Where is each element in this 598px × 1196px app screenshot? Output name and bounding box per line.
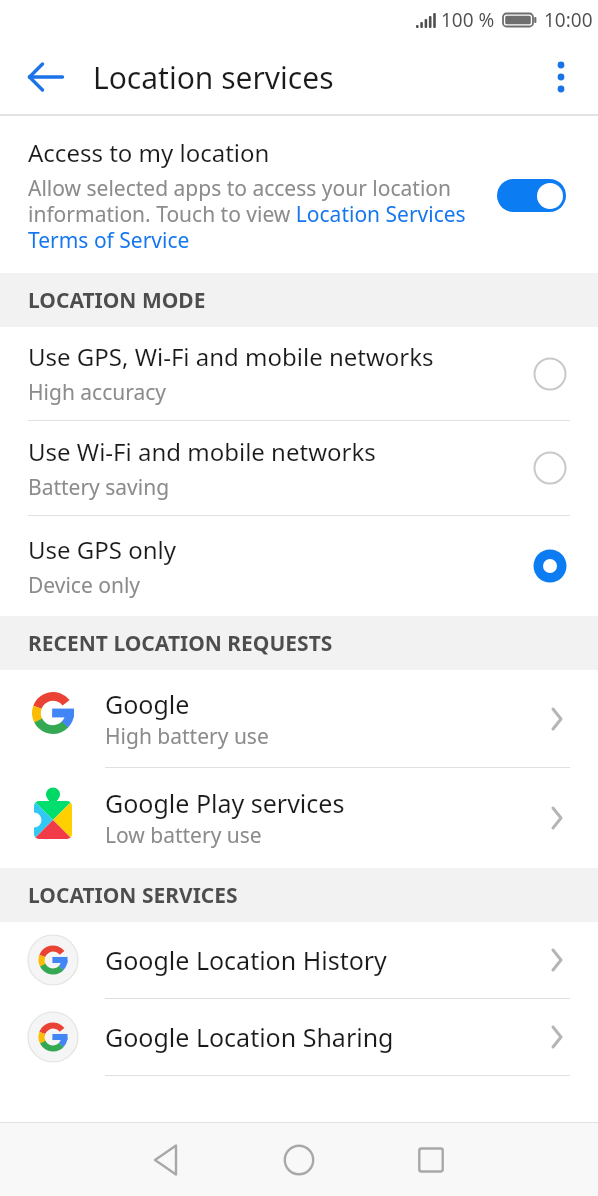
button[interactable] (143, 1136, 191, 1184)
staticText: Low battery use (105, 821, 262, 850)
button[interactable] (407, 1136, 455, 1184)
button[interactable] (22, 53, 70, 101)
button[interactable]: Google Location History (0, 922, 598, 998)
staticText: Battery saving (28, 473, 170, 502)
staticText: Google Location Sharing (105, 1020, 394, 1054)
staticText: Access to my location (28, 136, 270, 169)
staticText: Google Location History (105, 943, 387, 977)
button[interactable] (541, 57, 581, 97)
staticText: LOCATION SERVICES (28, 881, 238, 910)
staticText: RECENT LOCATION REQUESTS (28, 629, 333, 658)
staticText: High battery use (105, 722, 269, 751)
button[interactable] (275, 1136, 323, 1184)
staticText: LOCATION MODE (28, 286, 206, 315)
button[interactable]: Use GPS only (0, 516, 598, 616)
button[interactable]: Access to my location (0, 116, 598, 273)
button[interactable]: Google Location Sharing (0, 999, 598, 1075)
staticText: Google Play services (105, 786, 345, 820)
staticText: High accuracy (28, 378, 167, 407)
staticText: Use GPS only (28, 533, 177, 566)
staticText: Location services (93, 57, 334, 98)
button[interactable]: Google (0, 670, 598, 767)
button[interactable] (497, 179, 566, 212)
staticText: Use Wi-Fi and mobile networks (28, 435, 376, 468)
staticText: Use GPS, Wi-Fi and mobile networks (28, 340, 434, 373)
button[interactable]: Use Wi-Fi and mobile networks (0, 421, 598, 515)
button[interactable]: Use GPS, Wi-Fi and mobile networks (0, 327, 598, 420)
staticText: Allow selected apps to access your locat… (28, 174, 466, 255)
staticText: 10:00 (544, 7, 593, 33)
button[interactable]: Google Play services (0, 768, 598, 868)
staticText: 100 % (441, 7, 495, 33)
staticText: Google (105, 687, 190, 721)
staticText: Device only (28, 571, 141, 600)
